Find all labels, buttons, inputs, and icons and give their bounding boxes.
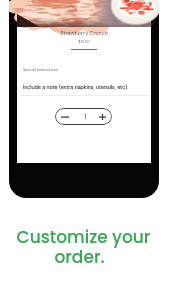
staticText: Customize your bbox=[0, 225, 168, 249]
staticText: Strawberry Crunch bbox=[17, 30, 151, 37]
staticText: Special Instructions bbox=[23, 67, 58, 72]
staticText: 1 bbox=[84, 112, 87, 121]
staticText: Include a note (extra napkins, utensils,… bbox=[23, 84, 128, 91]
staticText: order. bbox=[0, 245, 164, 269]
staticText: $10.00 bbox=[17, 39, 151, 44]
button[interactable]: Increase quantity bbox=[92, 108, 112, 125]
button[interactable]: Decrease quantity bbox=[55, 108, 75, 125]
